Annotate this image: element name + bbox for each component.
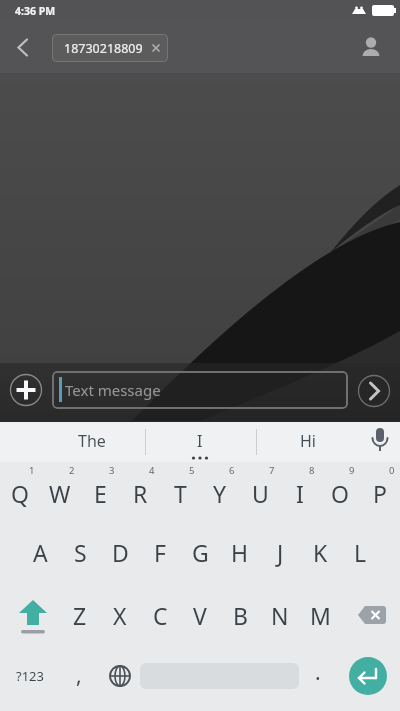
staticText: 0 (389, 464, 395, 476)
staticText: R (133, 478, 148, 509)
staticText: G (192, 537, 209, 568)
staticText: 4 (149, 464, 155, 476)
staticText: K (313, 537, 328, 568)
staticText: B (233, 600, 248, 631)
staticText: The (78, 430, 106, 452)
staticText: 2 (69, 464, 75, 476)
staticText: 4:36 PM (15, 4, 56, 18)
staticText: O (331, 478, 349, 509)
staticText: ?123 (16, 667, 44, 685)
staticText: 6 (229, 464, 235, 476)
staticText: E (94, 478, 107, 509)
staticText: Text message (65, 380, 161, 400)
staticText: 7 (269, 464, 275, 476)
staticText: U (252, 478, 269, 509)
staticText: 3 (109, 464, 115, 476)
staticText: I (197, 430, 203, 452)
staticText: M (310, 600, 331, 631)
staticText: I (296, 478, 304, 509)
staticText: C (153, 600, 168, 631)
staticText: F (154, 537, 166, 568)
staticText: D (112, 537, 129, 568)
staticText: 18730218809 (64, 40, 143, 57)
staticText: 1 (29, 464, 35, 476)
staticText: 9 (349, 464, 355, 476)
staticText: J (277, 537, 284, 568)
staticText: A (33, 537, 48, 568)
staticText: P (373, 478, 387, 509)
staticText: Hi (300, 430, 316, 452)
staticText: H (231, 537, 249, 568)
staticText: Q (11, 478, 29, 509)
staticText: X (113, 600, 127, 631)
staticText: Y (213, 478, 227, 509)
staticText: L (354, 537, 367, 568)
staticText: 8 (309, 464, 315, 476)
staticText: W (49, 478, 71, 509)
staticText: S (74, 537, 87, 568)
staticText: Z (73, 600, 87, 631)
staticText: V (193, 600, 207, 631)
staticText: , (76, 661, 82, 690)
staticText: N (271, 600, 289, 631)
staticText: T (174, 478, 187, 509)
staticText: . (315, 658, 321, 687)
staticText: 5 (189, 464, 195, 476)
